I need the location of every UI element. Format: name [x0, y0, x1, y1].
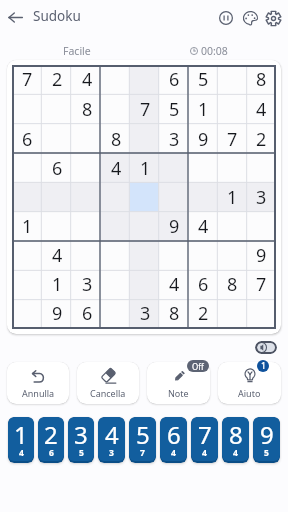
button[interactable]: Sound off [255, 341, 277, 354]
button[interactable] [247, 300, 276, 329]
button[interactable] [12, 271, 42, 300]
button[interactable] [218, 155, 247, 184]
button[interactable] [160, 184, 189, 213]
button[interactable]: 6 [189, 271, 218, 300]
button[interactable]: 1 [8, 417, 34, 463]
button[interactable]: 4 [247, 95, 276, 125]
button[interactable]: 8 [222, 417, 249, 463]
button[interactable] [131, 65, 160, 95]
button[interactable] [247, 213, 276, 242]
button[interactable] [42, 213, 72, 242]
button[interactable]: 7 [247, 271, 276, 300]
button[interactable]: 6 [160, 417, 187, 463]
button[interactable]: Note [147, 362, 210, 404]
button[interactable]: 2 [247, 125, 276, 155]
button[interactable]: Aiuto [218, 362, 281, 404]
button[interactable]: 6 [42, 155, 72, 184]
button[interactable] [12, 242, 42, 271]
button[interactable] [102, 213, 131, 242]
button[interactable]: 8 [160, 300, 189, 329]
button[interactable] [160, 155, 189, 184]
button[interactable]: 4 [102, 155, 131, 184]
button[interactable] [12, 184, 42, 213]
button[interactable]: 7 [218, 125, 247, 155]
button[interactable]: 3 [247, 184, 276, 213]
button[interactable]: Annulla [7, 362, 69, 404]
button[interactable] [12, 300, 42, 329]
button[interactable] [102, 184, 131, 213]
button[interactable]: 3 [131, 300, 160, 329]
button[interactable] [12, 155, 42, 184]
button[interactable] [102, 242, 131, 271]
button[interactable] [131, 125, 160, 155]
button[interactable] [72, 213, 102, 242]
button[interactable]: 3 [68, 417, 94, 463]
button[interactable] [102, 65, 131, 95]
button[interactable]: 8 [102, 125, 131, 155]
button[interactable]: 6 [12, 125, 42, 155]
button[interactable] [72, 155, 102, 184]
button[interactable] [42, 125, 72, 155]
button[interactable]: 8 [72, 95, 102, 125]
button[interactable]: Pause [214, 6, 238, 30]
button[interactable] [189, 184, 218, 213]
button[interactable] [131, 213, 160, 242]
button[interactable]: 1 [12, 213, 42, 242]
button[interactable]: 1 [218, 184, 247, 213]
button[interactable] [247, 155, 276, 184]
button[interactable]: 7 [131, 95, 160, 125]
button[interactable]: 8 [218, 271, 247, 300]
button[interactable]: 7 [12, 65, 42, 95]
button[interactable]: 4 [160, 271, 189, 300]
button[interactable] [131, 184, 160, 213]
button[interactable]: 2 [38, 417, 64, 463]
button[interactable] [189, 155, 218, 184]
button[interactable]: 8 [247, 65, 276, 95]
button[interactable] [42, 95, 72, 125]
button[interactable] [131, 242, 160, 271]
button[interactable]: 4 [98, 417, 125, 463]
button[interactable]: 3 [160, 125, 189, 155]
button[interactable]: 6 [72, 300, 102, 329]
button[interactable] [12, 95, 42, 125]
button[interactable] [72, 125, 102, 155]
button[interactable]: Cancella [77, 362, 139, 404]
button[interactable]: 4 [42, 242, 72, 271]
button[interactable] [189, 242, 218, 271]
button[interactable]: 5 [189, 65, 218, 95]
button[interactable] [102, 300, 131, 329]
button[interactable] [218, 242, 247, 271]
button[interactable] [218, 95, 247, 125]
button[interactable]: 2 [189, 300, 218, 329]
button[interactable] [160, 242, 189, 271]
button[interactable] [218, 300, 247, 329]
button[interactable] [72, 242, 102, 271]
button[interactable]: 9 [247, 242, 276, 271]
button[interactable]: 1 [189, 95, 218, 125]
button[interactable] [218, 65, 247, 95]
button[interactable]: 1 [42, 271, 72, 300]
button[interactable]: 4 [72, 65, 102, 95]
button[interactable]: 3 [72, 271, 102, 300]
button[interactable]: 2 [42, 65, 72, 95]
button[interactable]: 4 [189, 213, 218, 242]
button[interactable]: 6 [160, 65, 189, 95]
button[interactable]: 7 [191, 417, 218, 463]
button[interactable]: Back [3, 5, 27, 29]
button[interactable] [218, 213, 247, 242]
button[interactable]: 9 [189, 125, 218, 155]
button[interactable]: 9 [42, 300, 72, 329]
button[interactable]: Settings [261, 6, 285, 30]
button[interactable] [42, 184, 72, 213]
button[interactable]: 9 [160, 213, 189, 242]
button[interactable]: 5 [160, 95, 189, 125]
button[interactable] [72, 184, 102, 213]
button[interactable]: Theme [238, 6, 262, 30]
button[interactable] [131, 271, 160, 300]
button[interactable] [102, 271, 131, 300]
button[interactable]: 5 [129, 417, 156, 463]
button[interactable]: 1 [131, 155, 160, 184]
button[interactable] [102, 95, 131, 125]
staticText: Annulla [22, 387, 55, 399]
button[interactable]: 9 [253, 417, 280, 463]
